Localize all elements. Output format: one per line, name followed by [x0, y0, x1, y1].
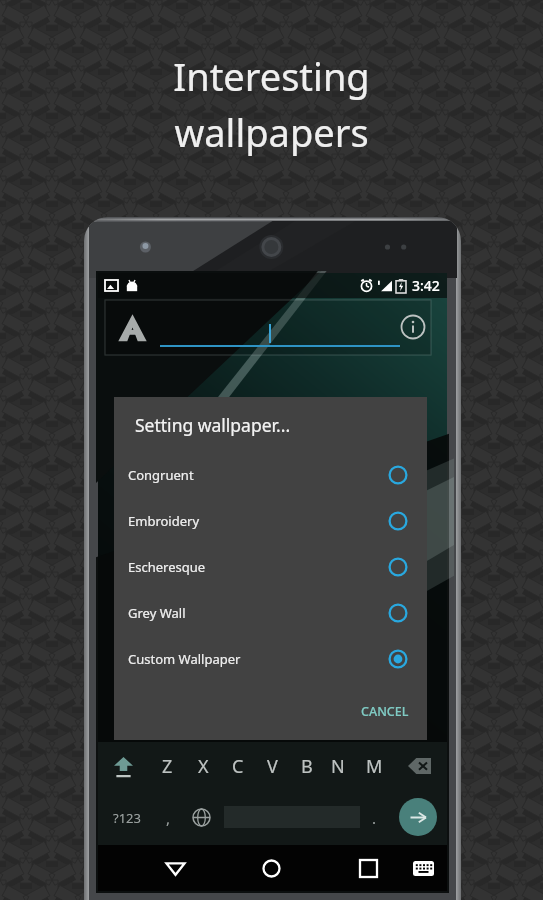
staticText: Interesting: [173, 50, 370, 102]
button[interactable]: Enter: [399, 798, 437, 836]
staticText: ,: [166, 808, 171, 828]
staticText: CANCEL: [361, 703, 409, 720]
staticText: Custom Wallpaper: [128, 650, 241, 668]
button[interactable]: Info: [398, 312, 428, 342]
staticText: Z: [162, 754, 173, 779]
button[interactable]: Home: [248, 845, 294, 891]
staticText: V: [267, 754, 278, 779]
staticText: M: [366, 754, 383, 779]
staticText: .: [372, 808, 377, 828]
button[interactable]: M: [357, 742, 391, 790]
staticText: B: [301, 754, 313, 779]
button[interactable]: X: [186, 742, 220, 790]
button[interactable]: Z: [150, 742, 184, 790]
staticText: Grey Wall: [128, 604, 186, 622]
button[interactable]: Delete: [400, 742, 440, 790]
button[interactable]: V: [255, 742, 289, 790]
button[interactable]: .: [360, 790, 388, 845]
staticText: Escheresque: [128, 558, 206, 576]
button[interactable]: Custom Wallpaper: [114, 636, 427, 682]
button[interactable]: C: [221, 742, 255, 790]
button[interactable]: CANCEL: [343, 693, 427, 730]
staticText: 3:42: [412, 276, 440, 295]
button[interactable]: B: [290, 742, 324, 790]
staticText: X: [198, 754, 209, 779]
staticText: ?123: [113, 809, 141, 827]
staticText: wallpapers: [174, 106, 369, 158]
staticText: Congruent: [128, 466, 194, 484]
staticText: C: [232, 754, 244, 779]
button[interactable]: N: [321, 742, 355, 790]
staticText: N: [331, 754, 345, 779]
button[interactable]: Embroidery: [114, 498, 427, 544]
button[interactable]: ,: [154, 790, 182, 845]
button[interactable]: Language: [186, 790, 216, 845]
button[interactable]: Congruent: [114, 452, 427, 498]
button[interactable]: Escheresque: [114, 544, 427, 590]
button[interactable]: Keyboard: [400, 845, 446, 891]
button[interactable]: Recents: [345, 845, 391, 891]
staticText: Embroidery: [128, 512, 200, 530]
button[interactable]: Grey Wall: [114, 590, 427, 636]
button[interactable]: [104, 742, 142, 790]
button[interactable]: Back: [152, 845, 198, 891]
button[interactable]: App logo: [117, 312, 147, 342]
staticText: Setting wallpaper...: [135, 413, 291, 437]
button[interactable]: ?123: [104, 790, 150, 845]
